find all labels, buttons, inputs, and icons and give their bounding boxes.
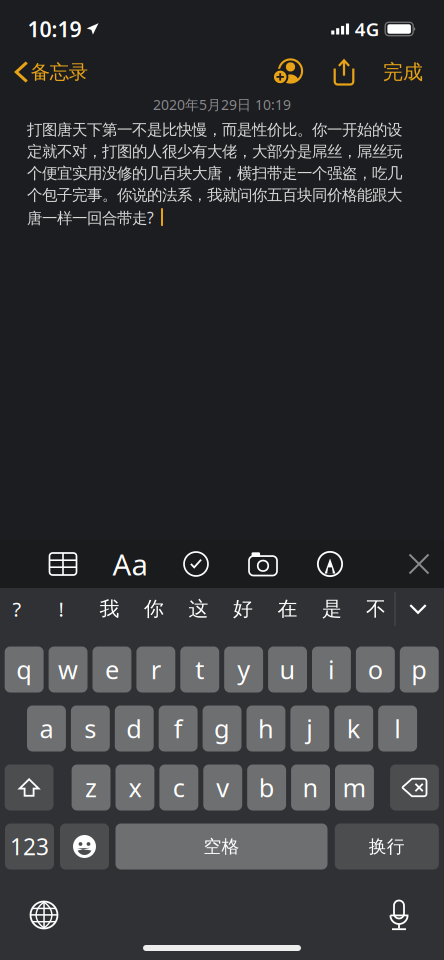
button[interactable]: w: [49, 646, 87, 692]
button[interactable]: Next keyboard: [20, 891, 68, 939]
staticText: 完成: [383, 59, 423, 85]
staticText: l: [394, 711, 401, 746]
button[interactable]: 这: [177, 588, 219, 630]
button[interactable]: Shift: [5, 764, 53, 810]
staticText: b: [259, 770, 275, 805]
staticText: z: [85, 770, 97, 805]
button[interactable]: o: [356, 646, 395, 692]
button[interactable]: 换行: [335, 823, 439, 869]
staticText: Aa: [112, 544, 147, 583]
staticText: k: [347, 711, 361, 746]
button[interactable]: Text format: [107, 541, 153, 587]
button[interactable]: d: [115, 705, 154, 751]
staticText: p: [411, 652, 427, 687]
staticText: !: [58, 595, 63, 623]
button[interactable]: 我: [88, 588, 130, 630]
button[interactable]: t: [180, 646, 219, 692]
button[interactable]: 在: [266, 588, 308, 630]
staticText: i: [328, 652, 335, 687]
staticText: o: [368, 652, 383, 687]
staticText: 换行: [369, 835, 405, 858]
button[interactable]: ?: [0, 588, 38, 630]
staticText: 4G: [355, 17, 380, 41]
staticText: 123: [10, 831, 49, 862]
button[interactable]: x: [115, 764, 154, 810]
button[interactable]: s: [71, 705, 110, 751]
staticText: 你: [144, 596, 164, 621]
button[interactable]: h: [246, 705, 285, 751]
staticText: m: [342, 770, 366, 805]
staticText: u: [279, 652, 295, 687]
staticText: 打图唐天下第一不是比快慢，而是性价比。你一开始的设定就不对，打图的人很少有大佬，…: [27, 120, 402, 228]
button[interactable]: 好: [222, 588, 264, 630]
button[interactable]: g: [203, 705, 241, 751]
button[interactable]: 123: [5, 823, 54, 869]
button[interactable]: i: [312, 646, 351, 692]
button[interactable]: m: [335, 764, 374, 810]
button[interactable]: l: [378, 705, 417, 751]
staticText: j: [306, 711, 313, 746]
button[interactable]: 备忘录: [4, 52, 100, 92]
button[interactable]: Dictation: [378, 889, 419, 941]
button[interactable]: k: [334, 705, 373, 751]
button[interactable]: 是: [311, 588, 353, 630]
button[interactable]: 不: [355, 588, 397, 630]
staticText: ?: [12, 595, 21, 623]
staticText: q: [16, 652, 32, 687]
staticText: d: [126, 711, 142, 746]
staticText: 10:19: [27, 15, 81, 43]
staticText: 是: [322, 596, 342, 621]
button[interactable]: Add People: [263, 50, 309, 93]
staticText: g: [214, 711, 230, 746]
button[interactable]: v: [203, 764, 242, 810]
staticText: 我: [99, 596, 119, 621]
button[interactable]: Share: [323, 49, 364, 95]
button[interactable]: j: [290, 705, 329, 751]
button[interactable]: a: [27, 705, 66, 751]
staticText: f: [174, 711, 183, 746]
staticText: 好: [233, 596, 253, 621]
button[interactable]: c: [159, 764, 198, 810]
button[interactable]: Hide candidates: [396, 588, 440, 630]
button[interactable]: y: [224, 646, 263, 692]
staticText: 在: [277, 596, 297, 621]
staticText: 备忘录: [31, 60, 88, 84]
staticText: 2020年5月29日 10:19: [153, 95, 291, 114]
button[interactable]: Markup: [307, 541, 353, 587]
staticText: c: [173, 770, 185, 805]
staticText: 空格: [203, 835, 239, 858]
button[interactable]: 你: [133, 588, 175, 630]
staticText: e: [105, 652, 119, 687]
button[interactable]: !: [40, 588, 82, 630]
button[interactable]: Delete: [390, 764, 439, 810]
staticText: h: [258, 711, 274, 746]
button[interactable]: Table: [40, 541, 86, 587]
staticText: x: [128, 770, 141, 805]
staticText: a: [39, 711, 53, 746]
staticText: t: [195, 652, 204, 687]
staticText: v: [216, 770, 229, 805]
button[interactable]: Camera: [240, 541, 286, 587]
button[interactable]: 完成: [373, 53, 433, 91]
button[interactable]: Emoji: [60, 823, 109, 869]
staticText: 不: [366, 596, 386, 621]
staticText: n: [303, 770, 319, 805]
button[interactable]: f: [159, 705, 198, 751]
button[interactable]: e: [92, 646, 131, 692]
button[interactable]: 空格: [115, 823, 327, 869]
staticText: 这: [188, 596, 208, 621]
button[interactable]: b: [247, 764, 286, 810]
staticText: r: [151, 652, 161, 687]
button[interactable]: Close keyboard: [396, 541, 442, 587]
button[interactable]: z: [72, 764, 110, 810]
button[interactable]: Checklist: [173, 541, 219, 587]
staticText: y: [237, 652, 250, 687]
button[interactable]: r: [136, 646, 175, 692]
staticText: s: [84, 711, 96, 746]
button[interactable]: p: [400, 646, 439, 692]
staticText: w: [58, 652, 78, 687]
button[interactable]: n: [291, 764, 330, 810]
button[interactable]: u: [268, 646, 307, 692]
button[interactable]: q: [5, 646, 44, 692]
